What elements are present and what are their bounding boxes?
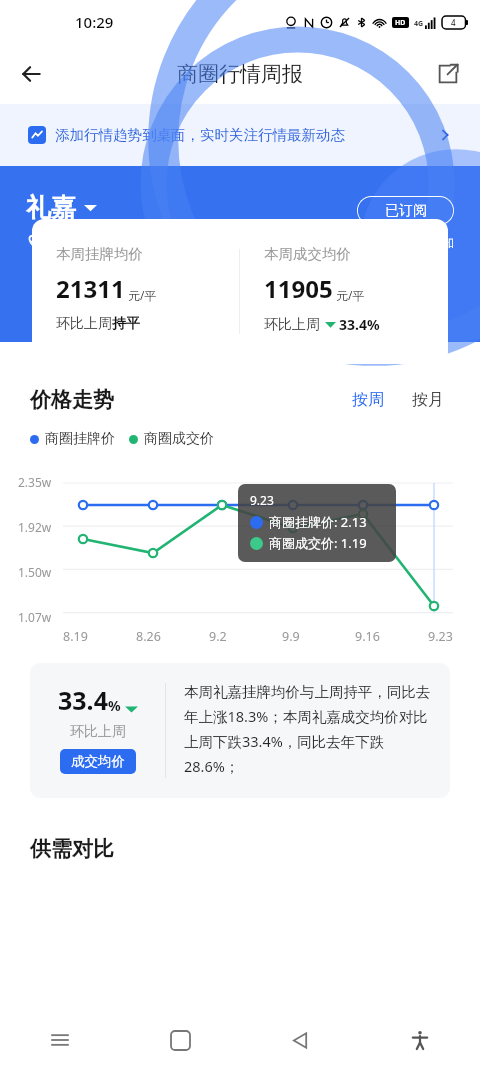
button[interactable]: Accessibility [360,1014,480,1066]
button[interactable]: 礼嘉 [26,192,97,223]
staticText: 2.35w [18,474,52,490]
staticText: 商圈挂牌价 [45,430,115,448]
staticText: 9.9 [282,628,322,645]
staticText: 33.4 [58,683,108,717]
staticText: 持平 [112,315,140,333]
staticText: 添加行情趋势到桌面，实时关注行情最新动态 [55,126,345,144]
staticText: HD [395,18,406,28]
staticText: 1.50w [18,564,52,580]
staticText: 21311 [56,272,125,305]
staticText: 1.92w [18,519,52,535]
staticText: 价格走势 [30,387,114,413]
staticText: 环比上周 [70,723,126,741]
staticText: 元/平 [128,287,157,303]
staticText: % [108,696,121,715]
staticText: 1.07w [18,609,52,625]
button[interactable]: 已订阅 [357,196,454,225]
staticText: 每周日消息通知 [363,234,454,250]
button[interactable]: 按周 [346,386,390,414]
staticText: 本周挂牌均价 [56,245,143,263]
button[interactable]: Back [240,1014,360,1066]
staticText: 9.2 [209,628,249,645]
staticText: 11905 [264,272,333,305]
staticText: 9.23 [250,492,274,508]
staticText: 商圈成交价: 1.19 [269,534,367,552]
staticText: 元/平 [336,287,365,303]
button[interactable]: Home [120,1014,240,1066]
staticText: 礼嘉 [26,192,76,223]
staticText: 4G [414,19,424,29]
staticText: 9.23 [428,628,468,645]
staticText: 成交均价 [71,753,125,770]
staticText: 8.19 [63,628,103,645]
staticText: 33.4% [339,315,380,334]
button[interactable]: 33.4 [30,663,450,798]
staticText: 按月 [412,390,444,410]
staticText: 供需对比 [30,836,114,862]
staticText: 环比上周 [56,315,112,333]
button[interactable]: 本周挂牌均价 [32,219,448,364]
staticText: 商圈挂牌价: 2.13 [269,513,367,531]
button[interactable]: Menu [0,1014,120,1066]
button[interactable]: 添加行情趋势到桌面，实时关注行情最新动态 [0,104,480,166]
button[interactable]: Share [426,52,470,96]
staticText: 商圈行情周报 [177,61,303,87]
staticText: 已订阅 [385,202,427,220]
staticText: 9.16 [355,628,395,645]
staticText: 按周 [352,390,384,410]
button[interactable]: 按月 [406,386,450,414]
staticText: 渝北 | 9月17日-9月23日 [44,231,196,250]
button[interactable]: Back [10,52,54,96]
staticText: 8.26 [136,628,176,645]
staticText: 4 [451,17,456,28]
staticText: 环比上周 [264,316,320,334]
staticText: 本周成交均价 [264,245,351,263]
staticText: 10:29 [75,12,114,32]
staticText: 本周礼嘉挂牌均价与上周持平，同比去年上涨18.3%；本周礼嘉成交均价对比上周下跌… [184,683,436,776]
staticText: 商圈成交价 [144,430,214,448]
